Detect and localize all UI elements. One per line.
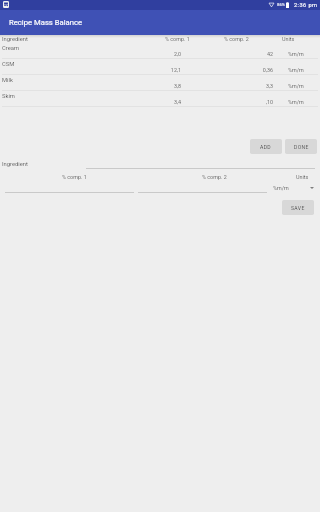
staticText: Skim — [2, 93, 15, 100]
staticText: %m/m — [288, 67, 304, 73]
button[interactable]: ADD — [250, 139, 282, 154]
staticText: % comp. 1 — [62, 174, 87, 180]
button[interactable]: Units — [270, 183, 318, 193]
staticText: 86% — [277, 2, 285, 7]
staticText: 0,36 — [247, 67, 273, 73]
staticText: ADD — [260, 144, 272, 150]
button[interactable]: CSM — [0, 59, 320, 75]
staticText: 12,1 — [155, 67, 181, 73]
staticText: % comp. 2 — [224, 36, 249, 42]
staticText: 3,8 — [155, 83, 181, 89]
staticText: %m/m — [288, 83, 304, 89]
button[interactable]: DONE — [285, 139, 317, 154]
staticText: 42 — [247, 51, 273, 57]
staticText: % comp. 1 — [165, 36, 190, 42]
staticText: Milk — [2, 77, 13, 84]
button[interactable]: Cream — [0, 43, 320, 59]
staticText: 3,4 — [155, 99, 181, 105]
button[interactable]: Milk — [0, 75, 320, 91]
staticText: %m/m — [288, 99, 304, 105]
staticText: Ingredient — [2, 36, 28, 43]
staticText: Recipe Mass Balance — [9, 18, 83, 27]
button[interactable]: SAVE — [282, 200, 314, 215]
staticText: DONE — [294, 144, 309, 150]
staticText: 2,0 — [155, 51, 181, 57]
staticText: 2:36 pm — [294, 2, 318, 9]
staticText: Cream — [2, 45, 19, 52]
staticText: %m/m — [273, 185, 289, 191]
staticText: %m/m — [288, 51, 304, 57]
staticText: Units — [296, 174, 309, 180]
other: Notification — [3, 1, 9, 8]
staticText: 3,3 — [247, 83, 273, 89]
staticText: Ingredient — [2, 161, 28, 168]
staticText: Units — [282, 36, 295, 42]
button[interactable]: Skim — [0, 91, 320, 107]
staticText: ,10 — [247, 99, 273, 105]
staticText: % comp. 2 — [202, 174, 227, 180]
staticText: SAVE — [291, 205, 305, 211]
staticText: CSM — [2, 61, 15, 68]
